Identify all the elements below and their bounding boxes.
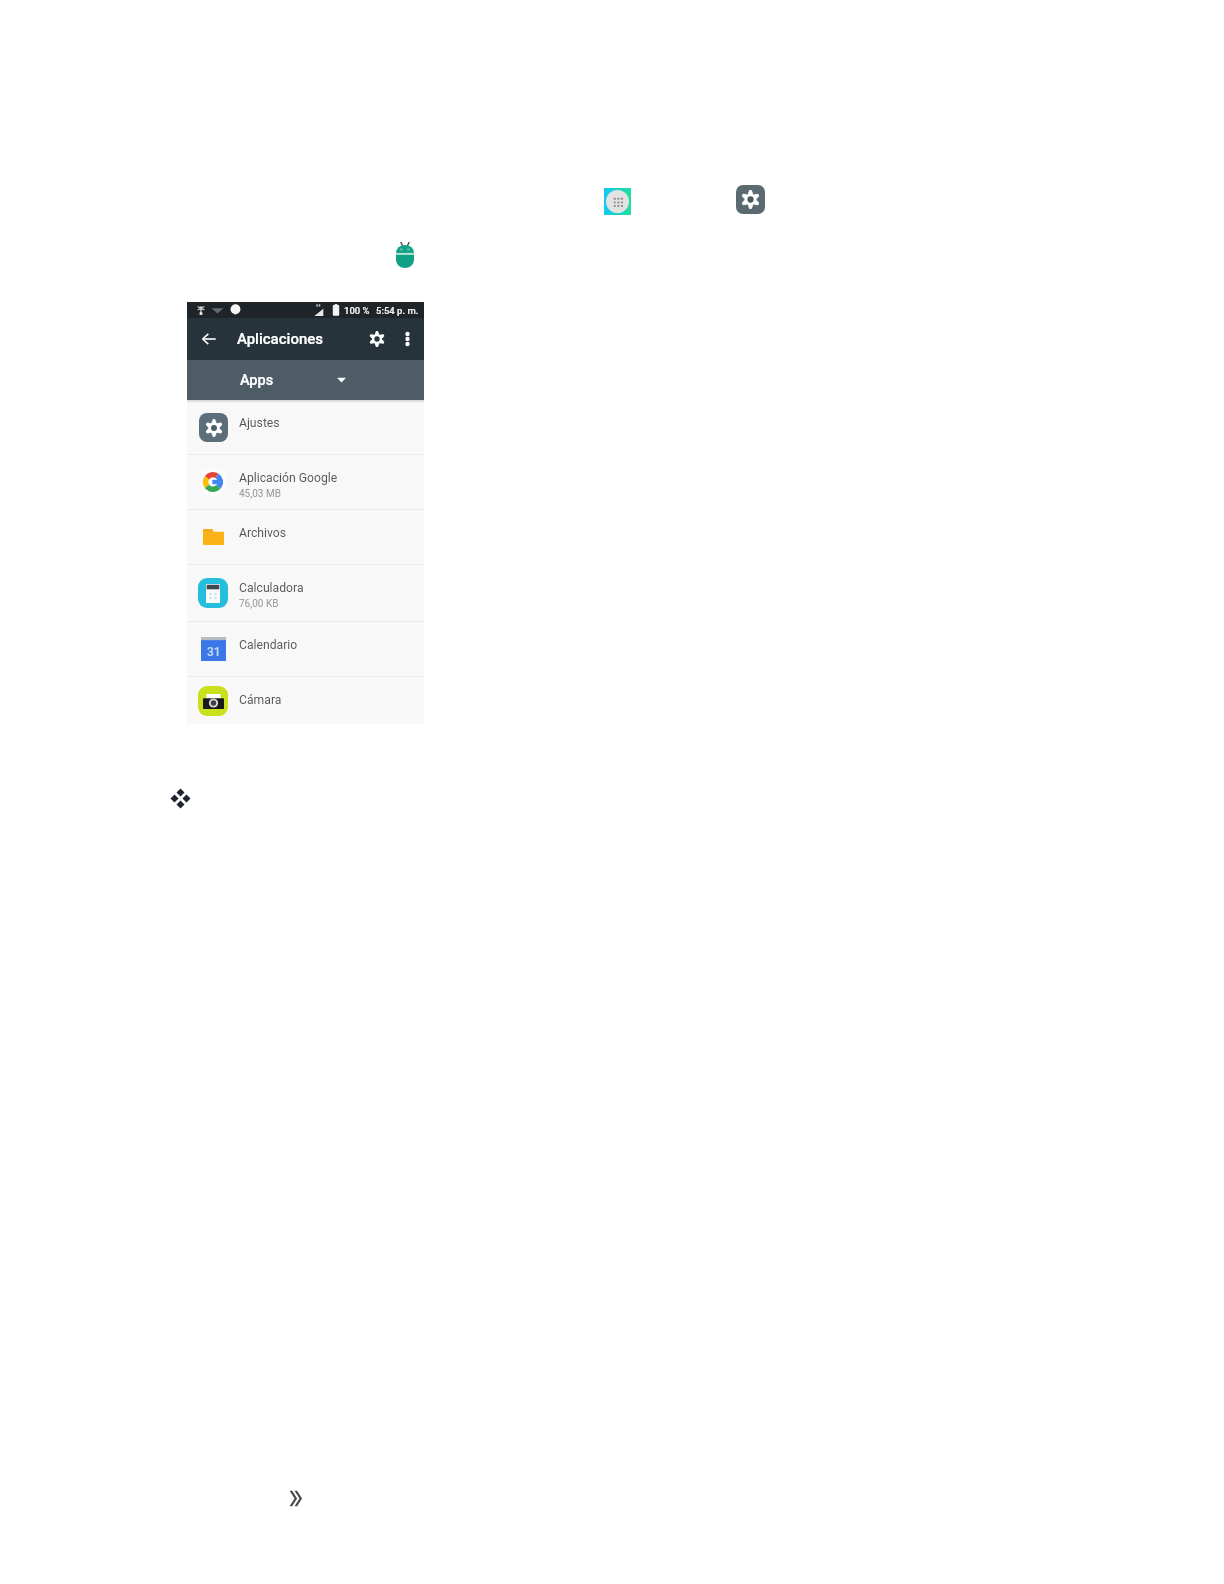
button[interactable]: Settings	[360, 318, 394, 360]
staticText: Archivos	[239, 526, 287, 540]
staticText: Calculadora	[239, 581, 304, 595]
staticText: Ajustes	[239, 416, 280, 430]
button[interactable]: Calculadora	[187, 565, 424, 621]
staticText: 31	[207, 645, 221, 659]
staticText: Apps	[240, 372, 274, 389]
staticText: Cámara	[239, 693, 282, 707]
staticText: Calendario	[239, 638, 298, 652]
staticText: 100 %	[344, 305, 370, 316]
button[interactable]: All apps	[604, 188, 631, 215]
button[interactable]: Back	[187, 318, 231, 360]
staticText: 45,03 MB	[239, 488, 281, 500]
button[interactable]: Aplicación Google	[187, 455, 424, 509]
button[interactable]: Settings	[736, 185, 765, 214]
button[interactable]: 31	[187, 622, 424, 676]
button[interactable]: Apps	[187, 360, 424, 400]
staticText: 76,00 KB	[239, 598, 279, 610]
button[interactable]: Ajustes	[187, 400, 424, 454]
staticText: 5:54 p. m.	[376, 305, 419, 316]
staticText: Aplicación Google	[239, 471, 338, 485]
staticText: Aplicaciones	[237, 330, 324, 348]
button[interactable]: More options	[394, 318, 420, 360]
button[interactable]: Cámara	[187, 677, 424, 724]
button[interactable]: Archivos	[187, 510, 424, 564]
